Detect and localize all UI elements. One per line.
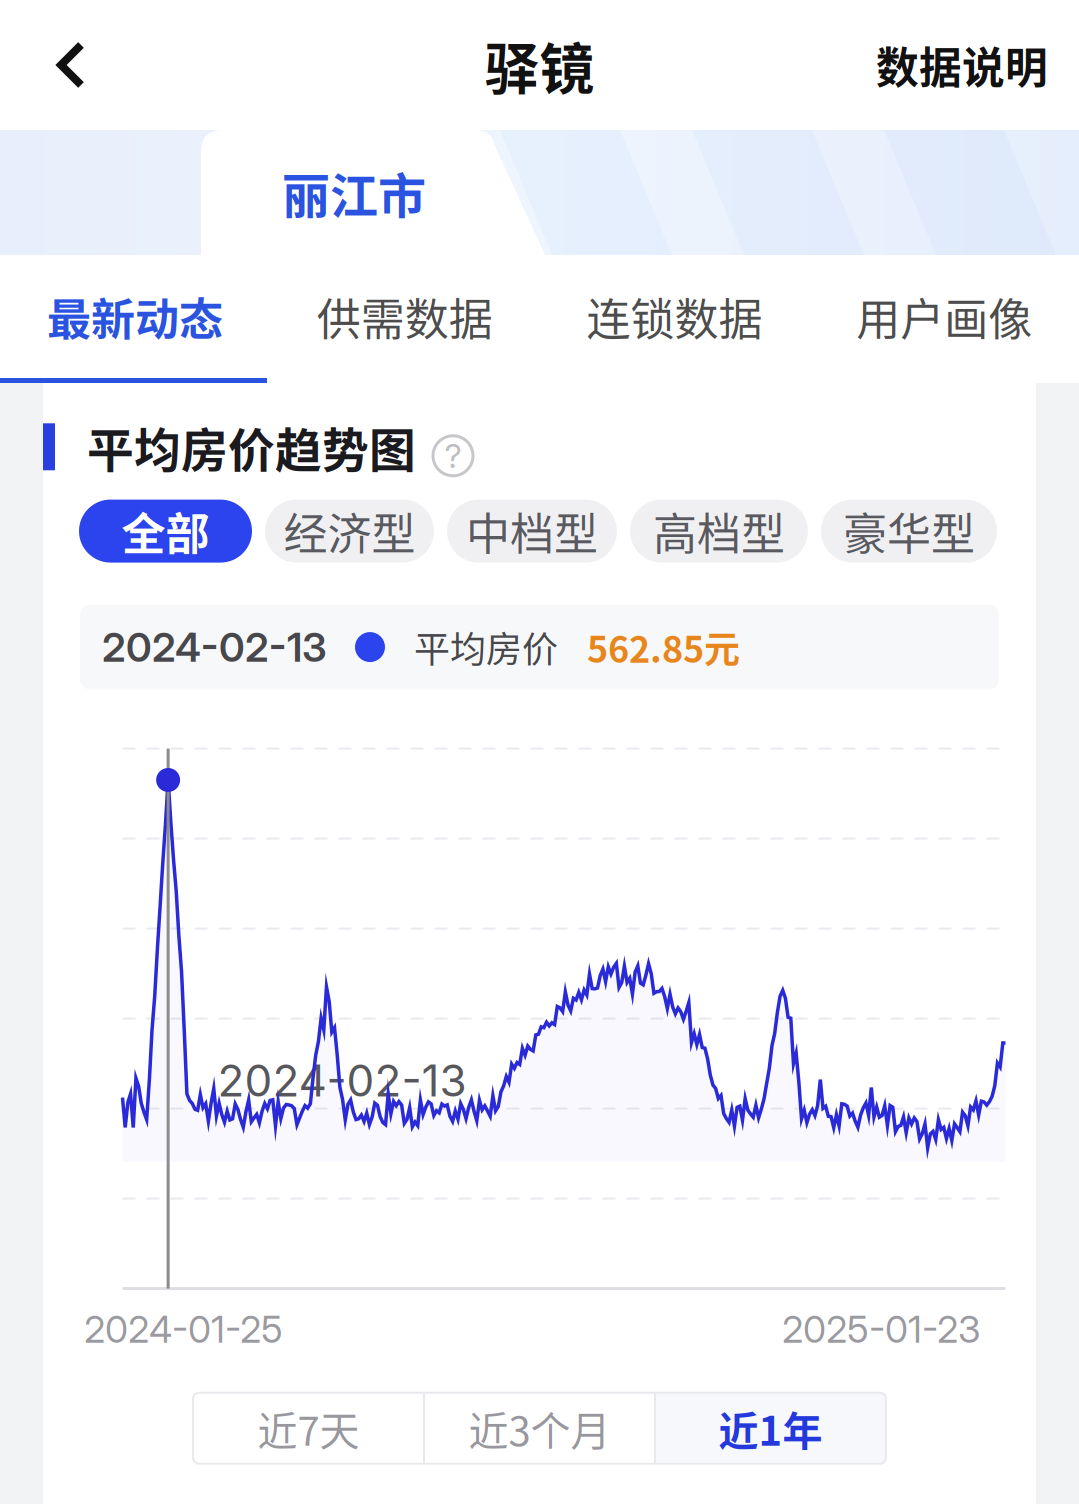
staticText: 2024-01-25 xyxy=(84,1307,283,1352)
staticText: 中档型 xyxy=(466,499,598,563)
button[interactable]: Help xyxy=(416,414,484,479)
button[interactable]: 数据说明 xyxy=(876,0,1079,130)
staticText: 供需数据 xyxy=(317,285,493,348)
staticText: 近1年 xyxy=(718,1399,822,1457)
staticText: 平均房价 xyxy=(414,621,558,673)
staticText: 562.85元 xyxy=(587,621,740,673)
staticText: 连锁数据 xyxy=(586,285,762,348)
button[interactable]: 高档型 xyxy=(630,500,808,563)
staticText: 丽江市 xyxy=(282,158,426,227)
staticText: 2025-01-23 xyxy=(782,1307,981,1352)
staticText: 经济型 xyxy=(283,499,415,563)
button[interactable]: 中档型 xyxy=(447,500,617,563)
staticText: 高档型 xyxy=(653,499,785,563)
staticText: 近3个月 xyxy=(468,1399,610,1457)
button[interactable]: Back xyxy=(0,0,116,130)
staticText: ? xyxy=(444,436,461,476)
staticText: 驿镜 xyxy=(484,25,594,105)
button[interactable]: 近1年 xyxy=(656,1393,885,1464)
staticText: 平均房价趋势图 xyxy=(87,413,416,481)
staticText: 数据说明 xyxy=(876,34,1048,96)
staticText: 用户画像 xyxy=(856,285,1032,348)
button[interactable]: 豪华型 xyxy=(821,500,997,563)
staticText: 2024-02-13 xyxy=(102,623,327,671)
staticText: 2024-02-13 xyxy=(217,1054,466,1107)
staticText: 近7天 xyxy=(257,1399,359,1457)
button[interactable]: 用户画像 xyxy=(809,255,1079,378)
staticText: 豪华型 xyxy=(843,499,975,563)
staticText: 全部 xyxy=(121,499,209,563)
button[interactable]: 近7天 xyxy=(194,1393,423,1464)
button[interactable]: 供需数据 xyxy=(270,255,540,378)
button[interactable]: 近3个月 xyxy=(425,1393,654,1464)
staticText: 最新动态 xyxy=(47,285,223,348)
button[interactable]: 连锁数据 xyxy=(539,255,809,378)
button[interactable]: 最新动态 xyxy=(0,255,270,378)
button[interactable]: 经济型 xyxy=(265,500,434,563)
button[interactable]: 全部 xyxy=(79,500,252,563)
